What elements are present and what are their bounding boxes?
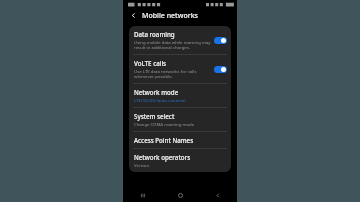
staticText: Change CDMA roaming mode — [134, 121, 195, 127]
button[interactable]: Recents — [123, 188, 161, 202]
staticText: Verizon — [134, 162, 150, 168]
button[interactable]: Back — [128, 10, 139, 21]
staticText: Using mobile data while roaming may resu… — [134, 39, 211, 50]
staticText: Data roaming — [134, 30, 175, 38]
button[interactable]: Access Point Names — [129, 132, 231, 148]
staticText: VoLTE calls — [134, 59, 167, 67]
button[interactable]: Network mode — [129, 84, 231, 107]
staticText: Network mode — [134, 88, 179, 96]
button[interactable]: Toggle VoLTE calls — [214, 66, 227, 73]
button[interactable]: Toggle Data roaming — [214, 37, 227, 44]
button[interactable]: VoLTE calls — [129, 55, 231, 83]
staticText: Use LTE data networks for calls whenever… — [134, 68, 211, 79]
staticText: System select — [134, 112, 175, 120]
staticText: Network operators — [134, 153, 191, 161]
staticText: LTE/3G/2G (auto-connect) — [134, 97, 186, 103]
button[interactable]: Home — [161, 188, 199, 202]
button[interactable]: System select — [129, 108, 231, 131]
staticText: Mobile networks — [142, 11, 198, 21]
staticText: Access Point Names — [134, 136, 194, 144]
button[interactable]: Network operators — [129, 149, 231, 172]
button[interactable]: Back — [199, 188, 237, 202]
button[interactable]: Data roaming — [129, 26, 231, 54]
